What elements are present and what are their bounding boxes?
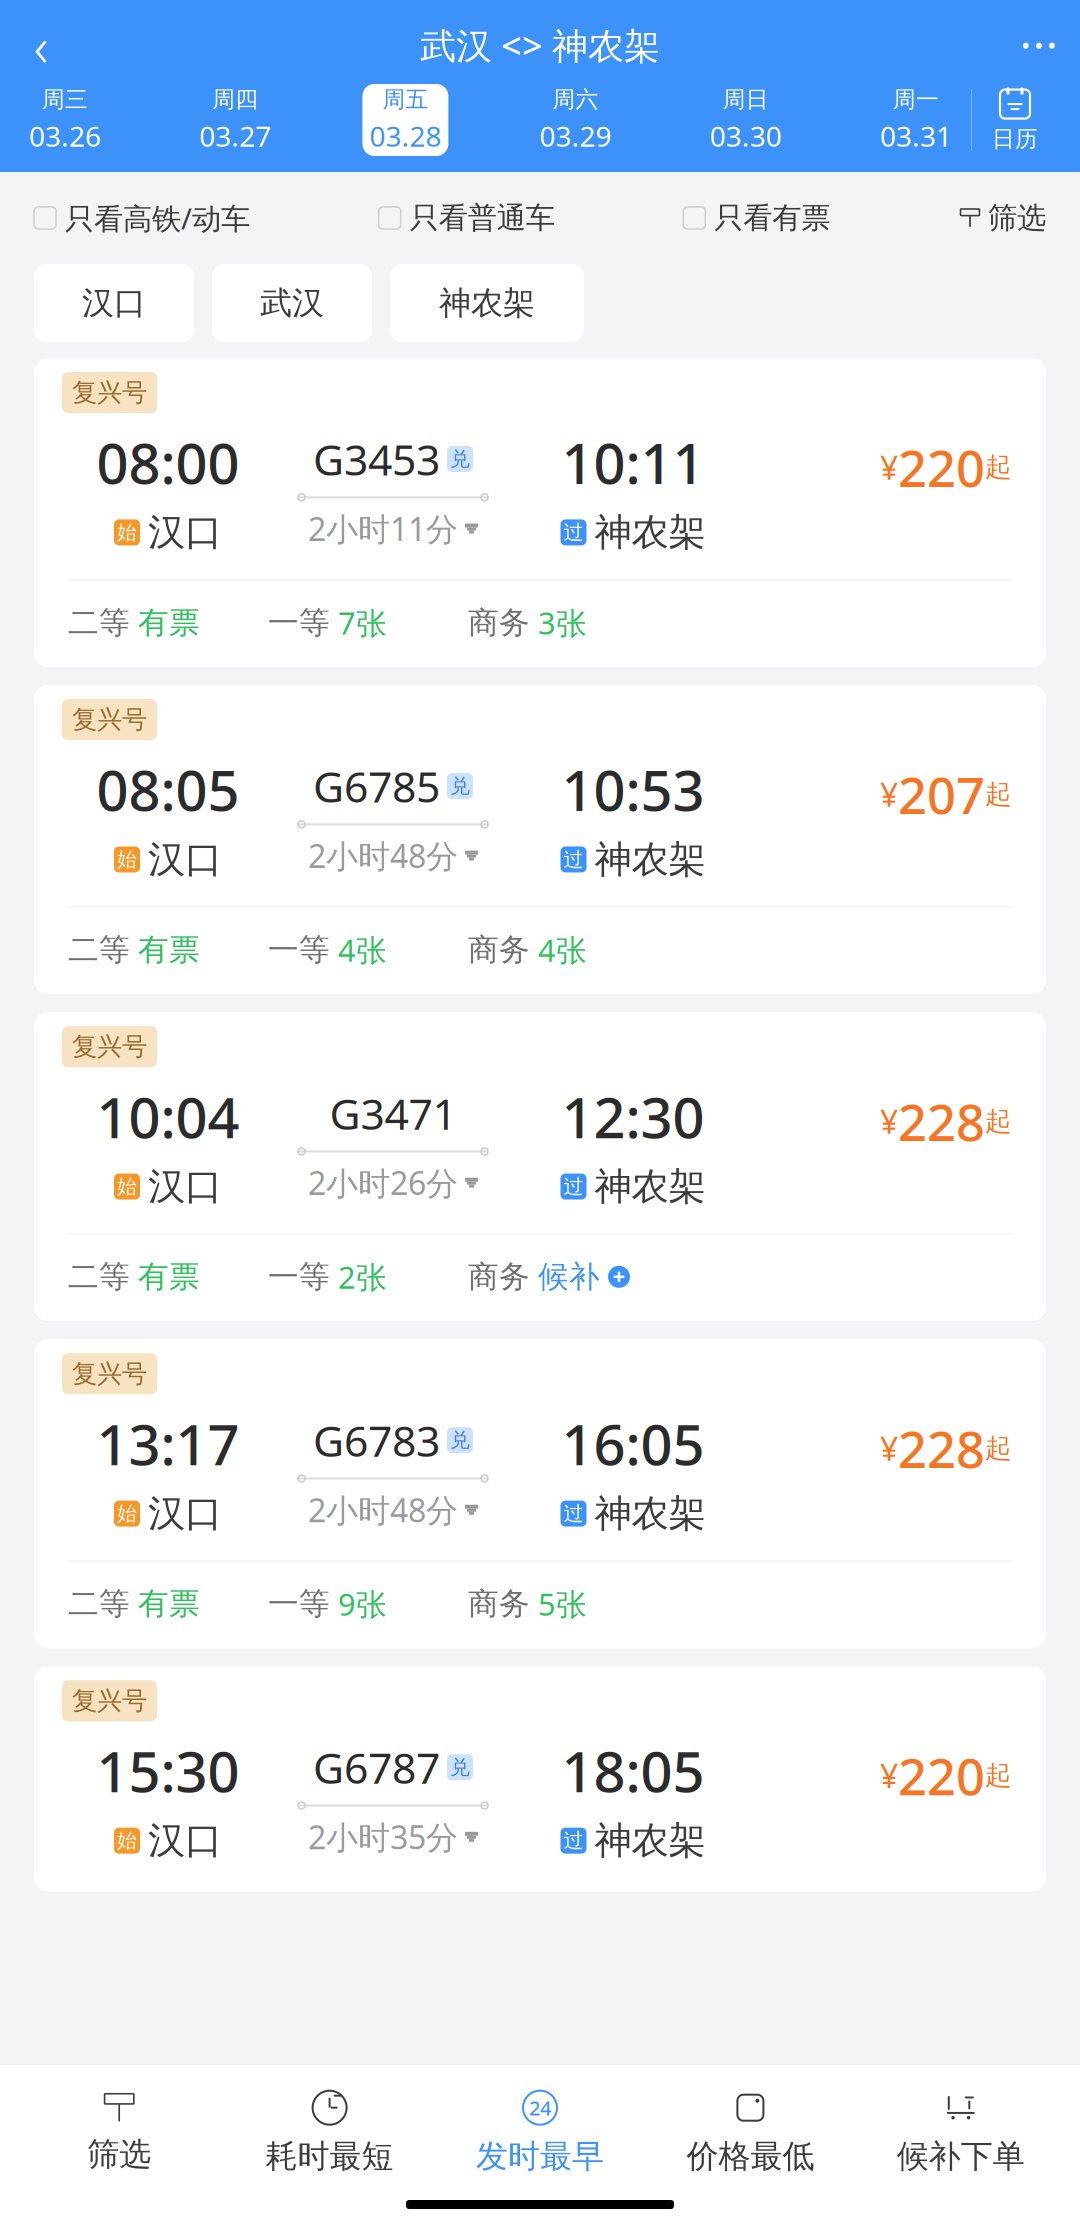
staticText: 过 [563, 1501, 583, 1526]
staticText: 过 [563, 847, 583, 872]
staticText: 神农架 [594, 1818, 705, 1864]
staticText: 有票 [138, 931, 200, 969]
staticText: 二等 [68, 604, 130, 642]
button[interactable]: 更多 [1008, 18, 1070, 72]
button[interactable]: 周一 [873, 84, 959, 156]
staticText: ¥ [880, 773, 898, 815]
staticText: • • • [1022, 32, 1056, 58]
staticText: 周三 [42, 85, 88, 113]
button[interactable]: 周四 [192, 84, 278, 156]
staticText: 03.28 [369, 117, 441, 154]
button[interactable]: 复兴号 [34, 685, 1046, 994]
staticText: 二等 [68, 1585, 130, 1623]
staticText: 商务 [468, 1258, 530, 1296]
button[interactable]: 只看高铁/动车 [34, 188, 250, 247]
staticText: 起 [985, 778, 1012, 811]
button[interactable]: 周五 [362, 84, 448, 156]
staticText: 汉口 [148, 1164, 222, 1209]
staticText: 始 [117, 520, 137, 545]
staticText: 汉口 [148, 836, 222, 882]
staticText: 过 [563, 1828, 583, 1853]
staticText: 武汉 <> 神农架 [420, 21, 660, 69]
staticText: 复兴号 [72, 377, 147, 408]
button[interactable]: 神农架 [390, 264, 584, 342]
button[interactable]: 复兴号 [34, 1666, 1046, 1891]
button[interactable]: 耗时最短 [224, 2079, 435, 2186]
staticText: 商务 [468, 931, 530, 969]
staticText: 13:17 [96, 1406, 239, 1481]
staticText: ¥ [880, 1427, 898, 1470]
staticText: 二等 [68, 931, 130, 969]
staticText: 228 [898, 1088, 985, 1155]
staticText: 03.26 [29, 117, 101, 154]
staticText: 16:05 [561, 1406, 704, 1481]
staticText: 始 [117, 1501, 137, 1526]
staticText: 有票 [138, 1258, 200, 1296]
staticText: 只看普通车 [410, 200, 555, 236]
staticText: 汉口 [148, 509, 222, 555]
staticText: G6787 [313, 1739, 440, 1796]
staticText: 二等 [68, 1258, 130, 1296]
button[interactable]: 复兴号 [34, 358, 1046, 667]
staticText: 08:00 [96, 425, 239, 499]
staticText: 3张 [538, 602, 587, 643]
staticText: 9张 [338, 1583, 387, 1624]
staticText: 筛选 [988, 200, 1046, 236]
staticText: 周六 [553, 85, 599, 113]
button[interactable]: 价格最低 [645, 2079, 856, 2186]
button[interactable]: 周日 [703, 84, 789, 156]
staticText: ¥ [880, 1100, 898, 1143]
staticText: 复兴号 [72, 1358, 147, 1389]
staticText: 起 [985, 1432, 1012, 1465]
button[interactable]: 返回 [10, 18, 72, 72]
staticText: 03.31 [880, 117, 952, 154]
staticText: 228 [898, 1415, 985, 1482]
staticText: 7张 [338, 602, 387, 643]
staticText: 始 [117, 1174, 137, 1199]
staticText: 耗时最短 [266, 2137, 394, 2176]
staticText: 复兴号 [72, 1031, 147, 1062]
staticText: 18:05 [561, 1733, 704, 1808]
button[interactable]: 候补下单 [856, 2079, 1066, 2186]
button[interactable]: 只看有票 [683, 190, 830, 246]
staticText: 220 [898, 1742, 985, 1809]
staticText: 2张 [338, 1256, 387, 1297]
button[interactable]: 筛选 [959, 190, 1046, 246]
staticText: 一等 [268, 1258, 330, 1296]
staticText: 207 [898, 761, 985, 828]
button[interactable]: 周三 [22, 84, 108, 156]
staticText: ‹ [33, 8, 48, 82]
staticText: G6783 [313, 1412, 440, 1468]
staticText: 汉口 [148, 1491, 222, 1537]
staticText: 周四 [212, 85, 258, 113]
staticText: 商务 [468, 604, 530, 642]
staticText: 起 [985, 1105, 1012, 1138]
staticText: 2小时35分 [308, 1816, 458, 1858]
staticText: 一等 [268, 604, 330, 642]
staticText: G3453 [313, 431, 440, 487]
staticText: 发时最早 [476, 2137, 604, 2176]
staticText: 兑 [450, 1755, 470, 1779]
button[interactable]: 武汉 [212, 264, 372, 342]
staticText: 只看高铁/动车 [65, 198, 250, 237]
staticText: 兑 [450, 447, 470, 471]
staticText: 有票 [138, 1585, 200, 1623]
button[interactable]: 日历 [972, 84, 1058, 156]
button[interactable]: 汉口 [34, 264, 194, 342]
staticText: 2小时26分 [308, 1161, 458, 1204]
staticText: 价格最低 [686, 2137, 814, 2176]
button[interactable]: 24 [435, 2079, 645, 2186]
button[interactable]: 复兴号 [34, 1012, 1046, 1321]
button[interactable]: 只看普通车 [379, 190, 555, 246]
staticText: ¥ [880, 446, 898, 488]
staticText: 10:53 [561, 752, 704, 827]
staticText: 周日 [723, 85, 769, 113]
staticText: 兑 [450, 1428, 470, 1452]
staticText: 神农架 [439, 283, 535, 323]
staticText: 复兴号 [72, 704, 147, 735]
button[interactable]: 复兴号 [34, 1339, 1046, 1648]
staticText: 筛选 [87, 2135, 151, 2174]
staticText: 神农架 [594, 836, 705, 882]
button[interactable]: 周六 [533, 84, 619, 156]
button[interactable]: 筛选 [14, 2081, 224, 2184]
